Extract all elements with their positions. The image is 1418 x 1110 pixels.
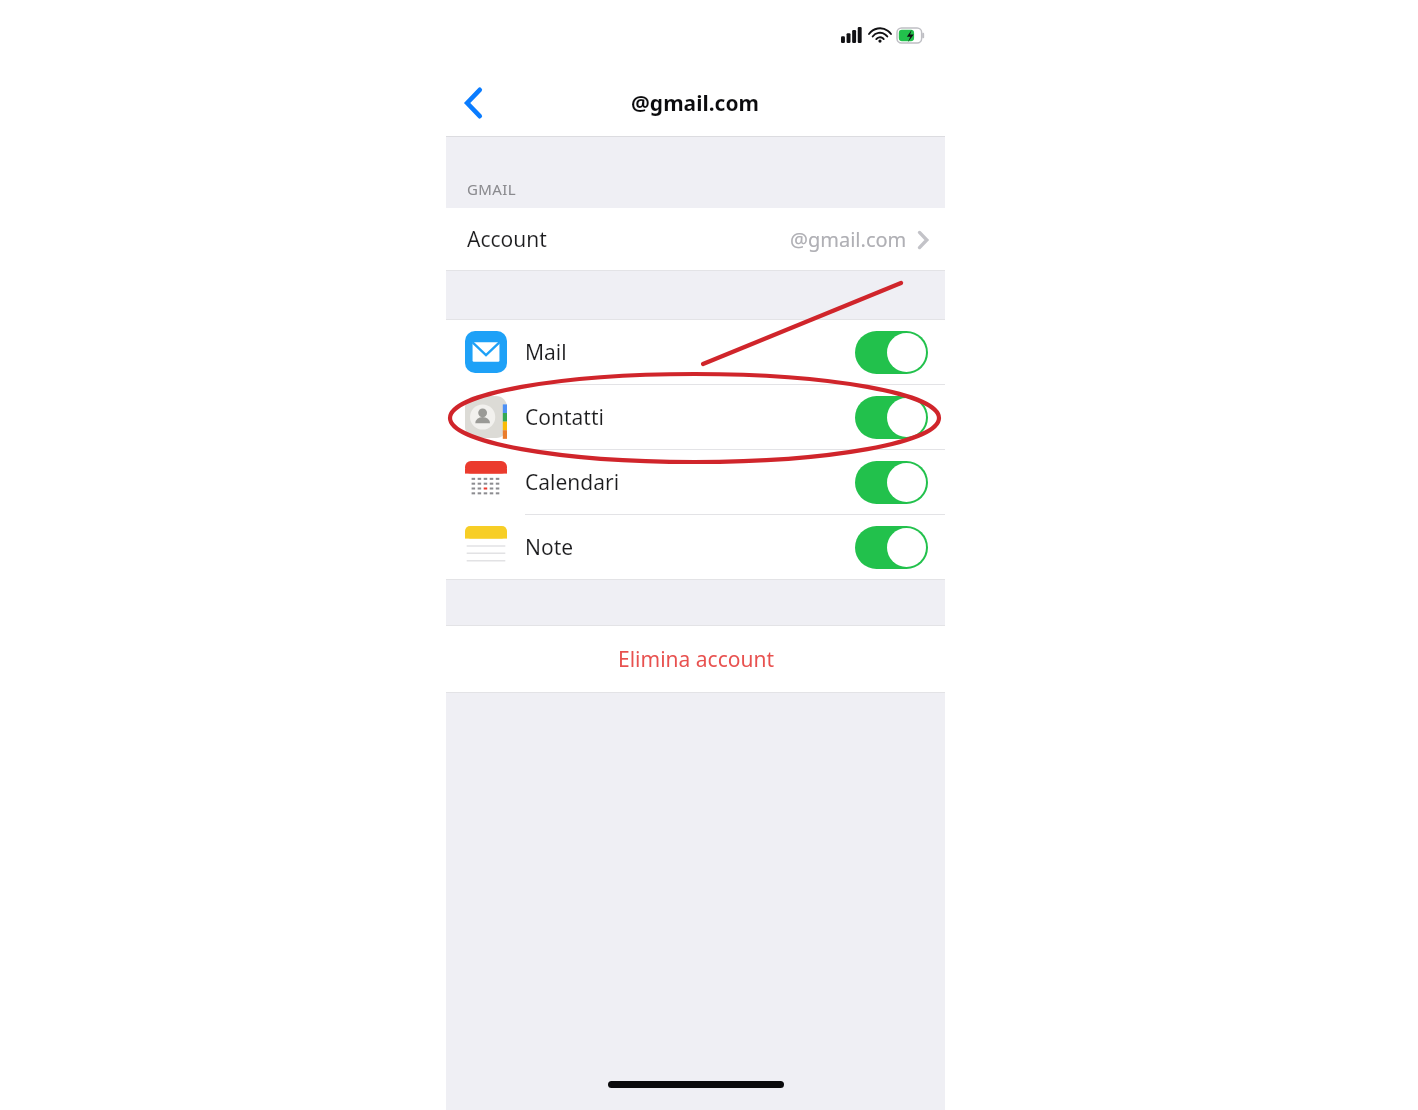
- staticText: @gmail.com: [790, 226, 907, 253]
- button[interactable]: Contatti: [446, 385, 945, 449]
- staticText: GMAIL: [467, 179, 517, 199]
- staticText: Calendari: [525, 468, 620, 497]
- button[interactable]: Back: [452, 81, 496, 125]
- staticText: Account: [467, 225, 547, 254]
- button[interactable]: Toggle on: [855, 461, 928, 504]
- button[interactable]: Elimina account: [446, 626, 945, 692]
- button[interactable]: Account: [446, 208, 945, 270]
- staticText: Mail: [525, 338, 567, 367]
- staticText: @gmail.com: [631, 89, 760, 118]
- staticText: Elimina account: [618, 645, 774, 674]
- button[interactable]: Toggle on: [855, 331, 928, 374]
- staticText: Contatti: [525, 403, 604, 432]
- button[interactable]: Mail: [446, 320, 945, 384]
- button[interactable]: Toggle on: [855, 526, 928, 569]
- button[interactable]: Toggle on: [855, 396, 928, 439]
- staticText: Note: [525, 533, 574, 562]
- button[interactable]: Note: [446, 515, 945, 579]
- button[interactable]: Calendari: [446, 450, 945, 514]
